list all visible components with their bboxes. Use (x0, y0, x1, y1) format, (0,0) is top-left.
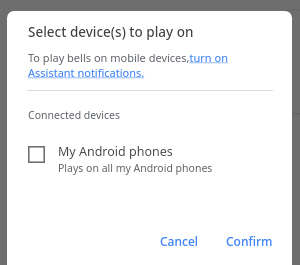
staticText: My Android phones (58, 143, 173, 160)
other: My Android phones checkbox (28, 146, 45, 163)
button[interactable]: My Android phones checkbox (7, 139, 292, 179)
staticText: Cancel (160, 233, 199, 249)
staticText: Confirm (226, 233, 273, 249)
button[interactable]: Cancel (151, 227, 208, 255)
button[interactable]: To play bells on mobile devices,turn on … (28, 50, 260, 80)
button[interactable]: Confirm (217, 227, 282, 255)
staticText: Plays on all my Android phones (58, 161, 213, 175)
staticText: Select device(s) to play on (28, 23, 194, 41)
staticText: Connected devices (28, 108, 121, 122)
